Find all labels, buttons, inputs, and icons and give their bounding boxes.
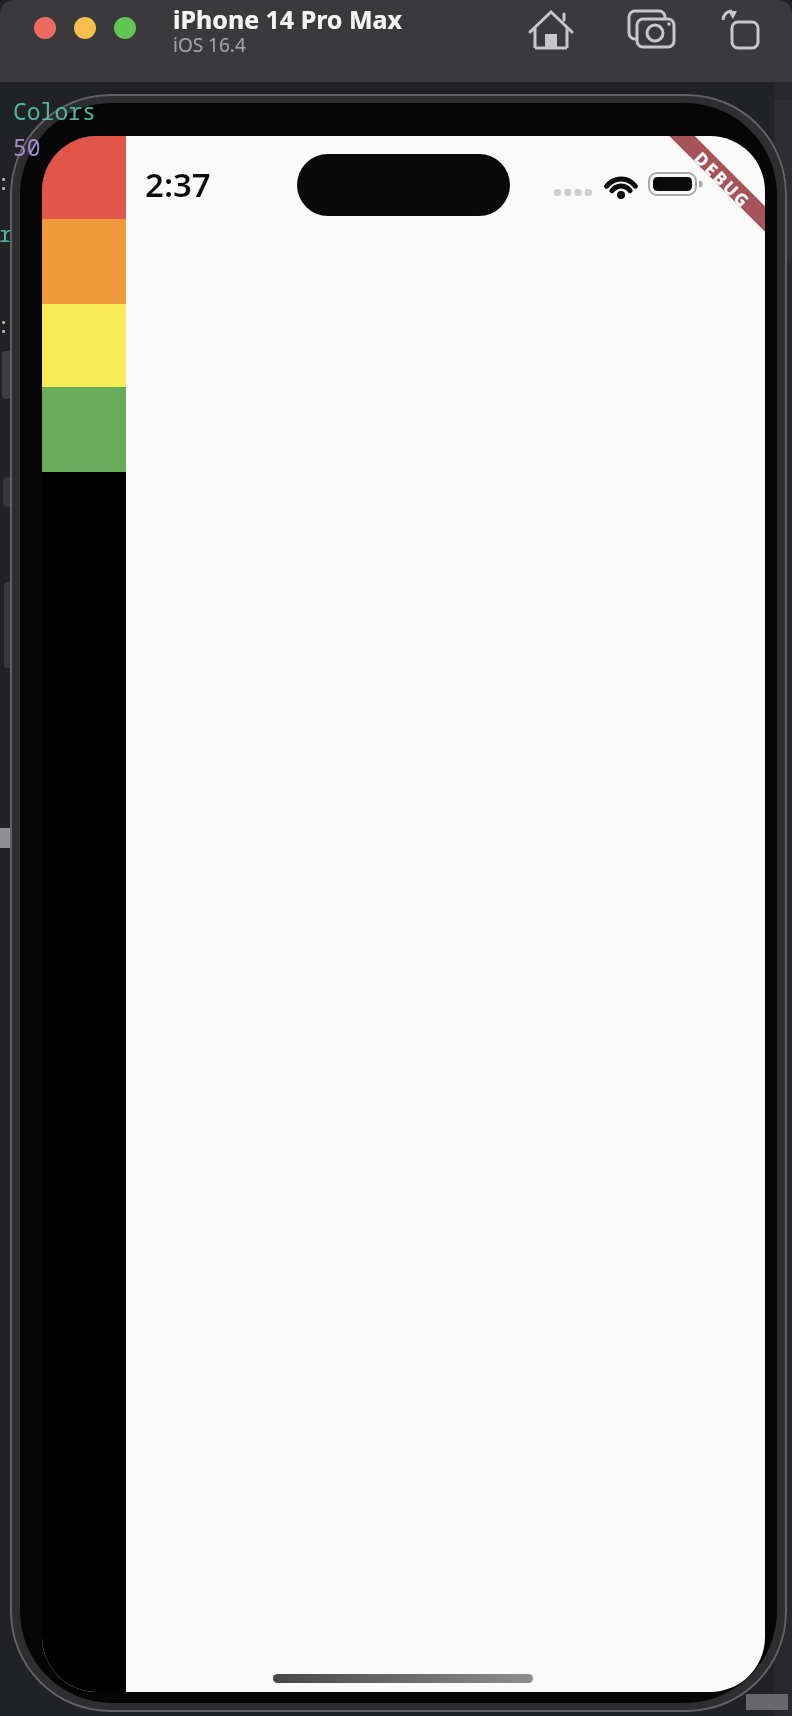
staticText: 2:37: [145, 162, 211, 207]
button[interactable]: [34, 17, 56, 39]
button[interactable]: [74, 17, 96, 39]
staticText: :: [0, 166, 11, 196]
staticText: :: [0, 309, 11, 339]
staticText: r: [0, 218, 13, 248]
button[interactable]: [627, 9, 677, 49]
button[interactable]: [720, 8, 764, 50]
staticText: Colors: [13, 95, 96, 126]
button[interactable]: [42, 136, 126, 219]
staticText: 50: [13, 131, 41, 162]
staticText: DEBUG: [693, 147, 756, 210]
button[interactable]: [114, 17, 136, 39]
staticText: iOS 16.4: [173, 32, 246, 58]
button[interactable]: [528, 8, 574, 50]
staticText: iPhone 14 Pro Max: [173, 2, 402, 36]
